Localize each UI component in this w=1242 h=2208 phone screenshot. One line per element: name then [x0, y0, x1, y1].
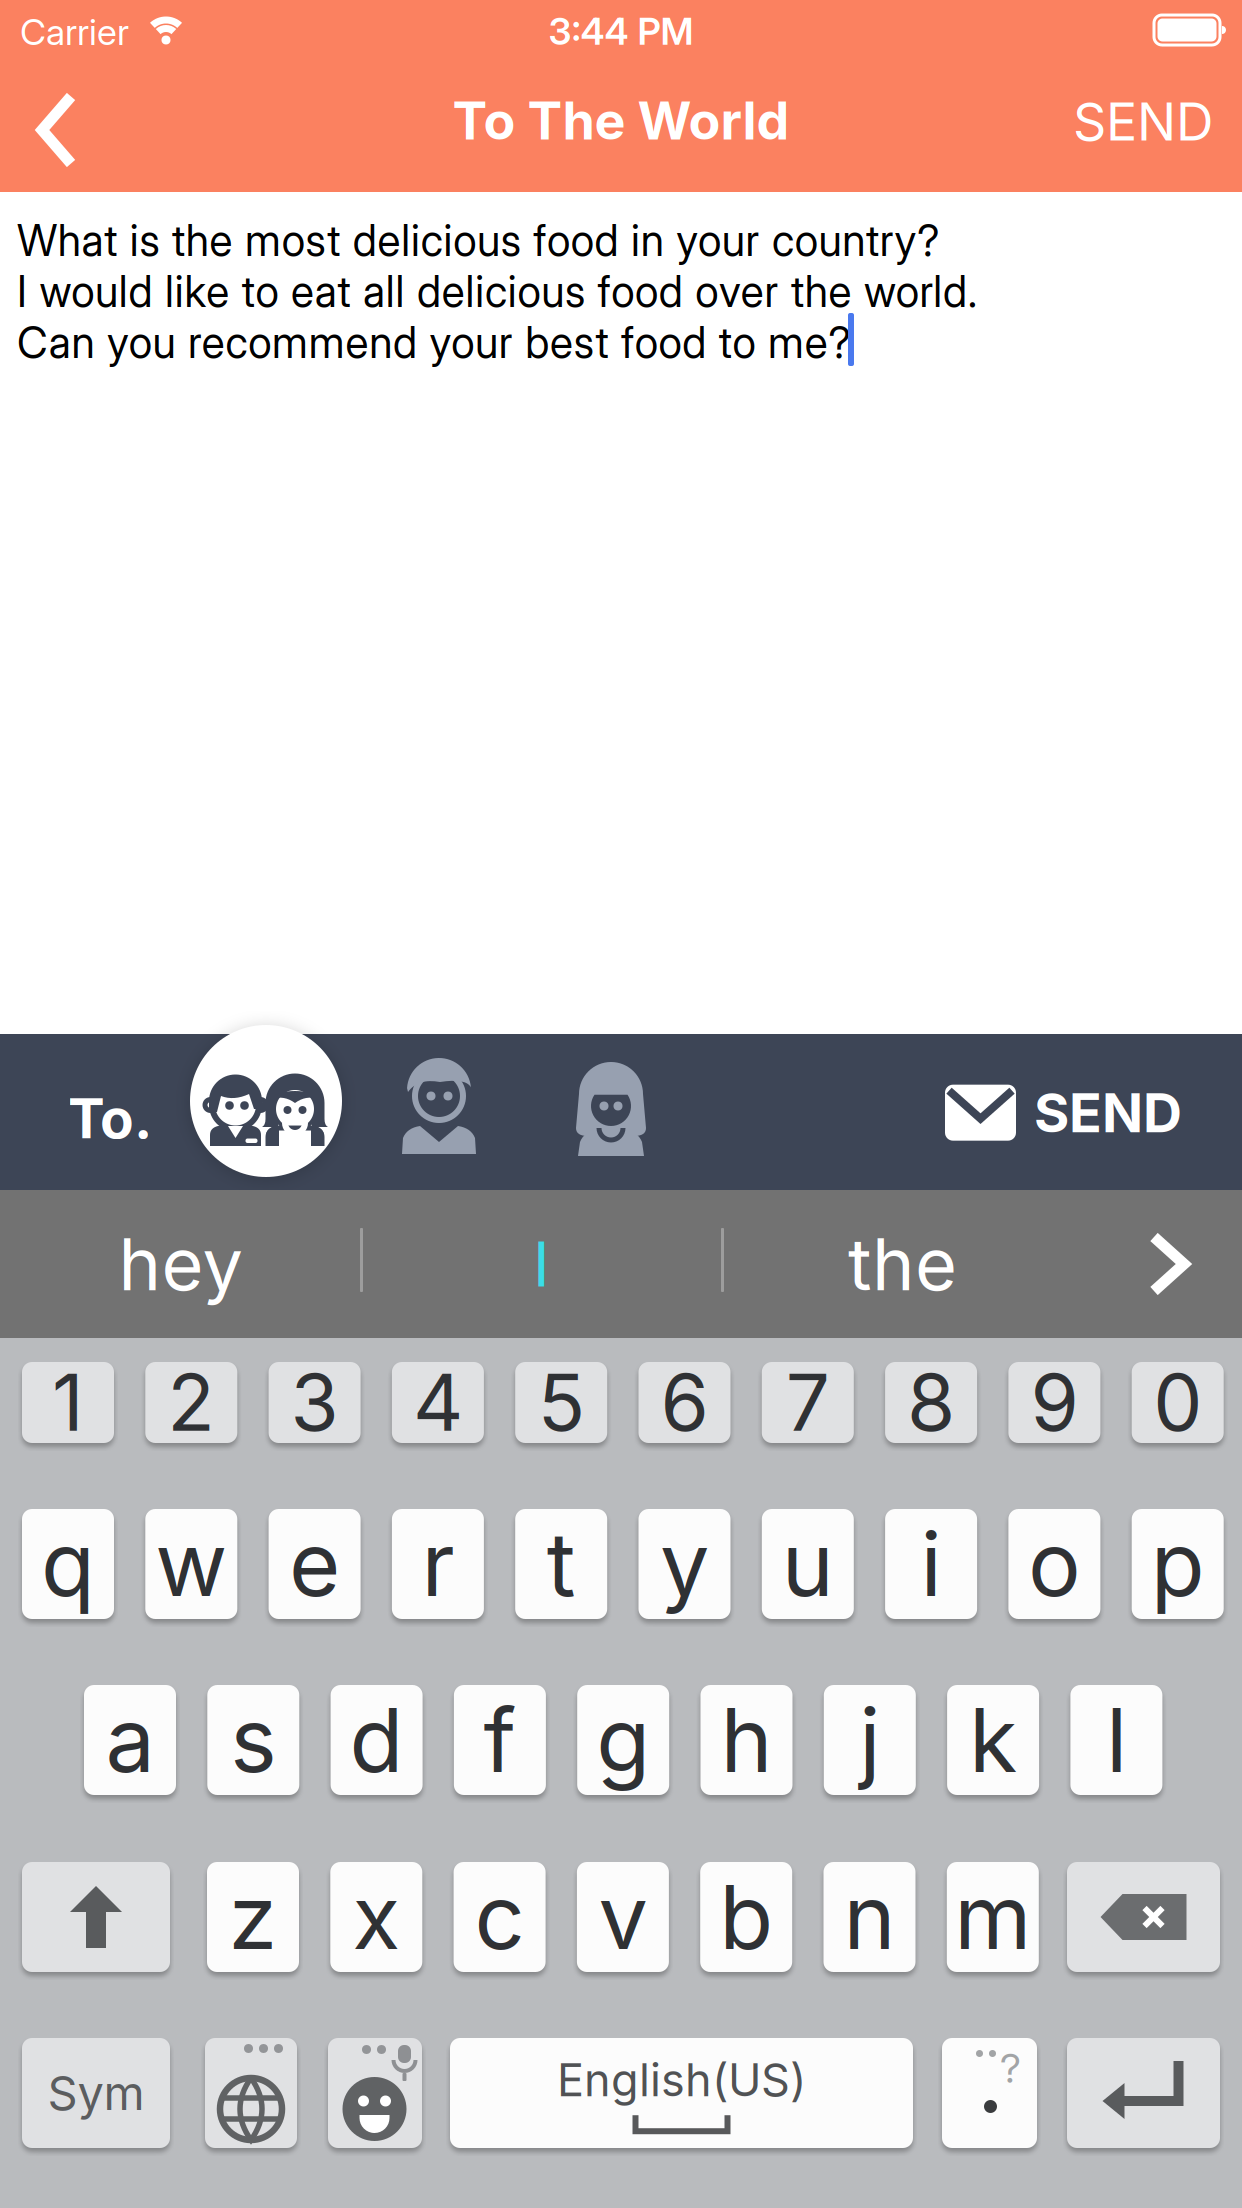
button[interactable]: Change language [205, 2038, 297, 2148]
staticText: 2 [167, 1355, 215, 1450]
staticText: y [660, 1511, 709, 1617]
button[interactable]: Send to women [572, 1058, 650, 1156]
staticText: o [1028, 1511, 1081, 1617]
button[interactable]: Symbols [22, 2038, 170, 2148]
staticText: 4 [413, 1355, 463, 1450]
staticText: f [483, 1687, 516, 1793]
button[interactable]: a [84, 1685, 176, 1795]
button[interactable]: o [1008, 1509, 1100, 1619]
staticText: 3:44 PM [548, 9, 693, 54]
button[interactable]: SEND [1073, 90, 1214, 153]
staticText: j [859, 1687, 880, 1793]
button[interactable]: i [885, 1509, 977, 1619]
button[interactable]: 6 [638, 1362, 730, 1443]
staticText: d [350, 1687, 404, 1793]
staticText: Carrier [20, 10, 129, 54]
staticText: z [228, 1864, 277, 1970]
staticText: I would like to eat all delicious food o… [17, 266, 977, 317]
staticText: 6 [660, 1355, 708, 1450]
staticText: 5 [538, 1355, 585, 1450]
button[interactable]: hey [0, 1190, 361, 1338]
staticText: 0 [1153, 1355, 1202, 1450]
staticText: the [848, 1220, 957, 1307]
button[interactable]: u [762, 1509, 854, 1619]
staticText: a [105, 1687, 154, 1793]
staticText: 7 [786, 1355, 830, 1450]
staticText: q [41, 1511, 95, 1617]
button[interactable]: 0 [1132, 1362, 1224, 1443]
staticText: 8 [907, 1355, 955, 1450]
staticText: 1 [52, 1355, 84, 1450]
button[interactable]: z [207, 1862, 299, 1972]
button[interactable]: m [947, 1862, 1039, 1972]
staticText: k [969, 1687, 1017, 1793]
button[interactable]: e [269, 1509, 361, 1619]
staticText: l [1106, 1687, 1127, 1793]
button[interactable]: 8 [885, 1362, 977, 1443]
staticText: hey [118, 1220, 242, 1307]
button[interactable]: SEND [945, 1080, 1182, 1145]
staticText: v [598, 1864, 647, 1970]
button[interactable]: 5 [515, 1362, 607, 1443]
button[interactable]: x [330, 1862, 422, 1972]
button[interactable]: Period [942, 2038, 1037, 2148]
button[interactable]: l [1070, 1685, 1162, 1795]
staticText: b [719, 1864, 773, 1970]
button[interactable]: y [638, 1509, 730, 1619]
button[interactable]: 7 [762, 1362, 854, 1443]
button[interactable]: q [22, 1509, 114, 1619]
button[interactable]: Emoji [328, 2038, 422, 2148]
button[interactable]: Send to everyone [190, 1025, 342, 1177]
staticText: 3 [291, 1355, 339, 1450]
button[interactable]: Delete [1067, 1862, 1220, 1972]
staticText: SEND [1073, 90, 1214, 153]
button[interactable]: b [700, 1862, 792, 1972]
staticText: m [954, 1864, 1031, 1970]
staticText: c [475, 1864, 525, 1970]
button[interactable]: f [454, 1685, 546, 1795]
button[interactable]: Send to men [400, 1056, 478, 1154]
staticText: SEND [1034, 1080, 1182, 1145]
button[interactable]: n [823, 1862, 915, 1972]
button[interactable]: Return [1067, 2038, 1220, 2148]
staticText: p [1151, 1511, 1205, 1617]
button[interactable]: h [700, 1685, 792, 1795]
staticText: Sym [47, 2065, 144, 2121]
staticText: What is the most delicious food in your … [17, 215, 939, 266]
staticText: 9 [1030, 1355, 1078, 1450]
button[interactable]: 4 [392, 1362, 484, 1443]
button[interactable]: the [722, 1190, 1083, 1338]
button[interactable]: Space [450, 2038, 913, 2148]
staticText: x [352, 1864, 400, 1970]
button[interactable]: d [331, 1685, 423, 1795]
button[interactable]: More suggestions [1110, 1190, 1230, 1338]
button[interactable]: r [392, 1509, 484, 1619]
button[interactable]: 1 [22, 1362, 114, 1443]
button[interactable]: g [577, 1685, 669, 1795]
button[interactable]: t [515, 1509, 607, 1619]
staticText: e [289, 1511, 340, 1617]
button[interactable]: k [947, 1685, 1039, 1795]
button[interactable]: w [145, 1509, 237, 1619]
button[interactable]: 2 [145, 1362, 237, 1443]
button[interactable]: v [577, 1862, 669, 1972]
button[interactable]: 9 [1008, 1362, 1100, 1443]
button[interactable]: I [361, 1190, 722, 1338]
staticText: Can you recommend your best food to me? [17, 317, 850, 368]
staticText: To. [68, 1085, 152, 1151]
button[interactable]: s [207, 1685, 299, 1795]
button[interactable]: Back [12, 75, 102, 185]
button[interactable]: c [454, 1862, 546, 1972]
staticText: r [421, 1511, 454, 1617]
staticText: I [533, 1226, 550, 1301]
staticText: s [230, 1687, 276, 1793]
staticText: g [596, 1687, 650, 1793]
staticText: u [782, 1511, 834, 1617]
staticText: h [720, 1687, 772, 1793]
button[interactable]: 3 [269, 1362, 361, 1443]
staticText: n [843, 1864, 895, 1970]
button[interactable]: p [1132, 1509, 1224, 1619]
staticText: w [155, 1511, 227, 1617]
button[interactable]: j [824, 1685, 916, 1795]
button[interactable]: Shift [22, 1862, 170, 1972]
